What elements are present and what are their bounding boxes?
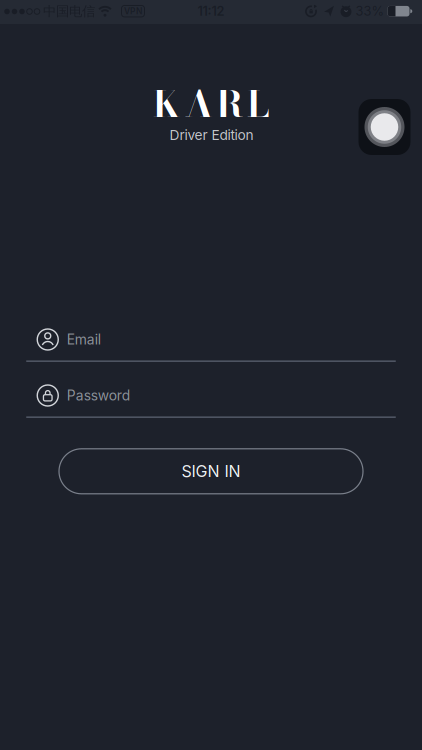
staticText: 11:12 [197,3,224,19]
staticText: Password [67,387,130,404]
staticText: SIGN IN [181,462,240,481]
button[interactable]: AssistiveTouch menu [358,99,410,155]
button[interactable]: SIGN IN [59,449,363,494]
staticText: VPN [124,6,142,16]
staticText: Driver Edition [169,127,253,143]
staticText: 33% [355,3,384,19]
staticText: KARL [153,76,269,131]
staticText: Email [67,331,101,348]
button[interactable]: Password [26,385,396,418]
button[interactable]: Email [26,329,396,362]
staticText: 中国电信 [43,3,95,20]
